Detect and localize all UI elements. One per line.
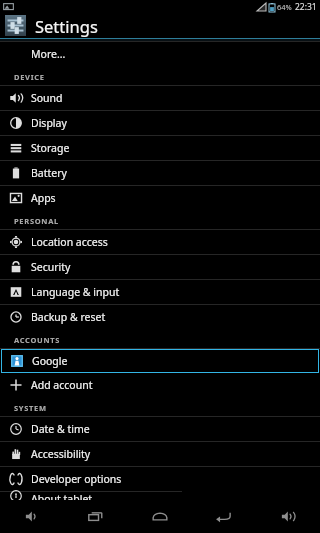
staticText: Sound <box>31 91 63 105</box>
staticText: Storage <box>31 141 70 155</box>
button[interactable]: Recent apps <box>64 500 128 533</box>
button[interactable]: Location access <box>0 230 320 254</box>
button[interactable]: Developer options <box>0 467 320 491</box>
button[interactable]: Security <box>0 255 320 279</box>
staticText: Google <box>32 354 68 368</box>
staticText: Security <box>31 260 71 274</box>
button[interactable]: Volume up <box>256 500 320 533</box>
button[interactable]: Accessibility <box>0 442 320 466</box>
staticText: Battery <box>31 166 67 180</box>
button[interactable]: Add account <box>0 373 320 397</box>
staticText: Display <box>31 116 67 130</box>
staticText: More... <box>31 47 66 61</box>
staticText: Add account <box>31 378 93 392</box>
staticText: ACCOUNTS <box>14 335 61 345</box>
button[interactable]: Battery <box>0 161 320 185</box>
button[interactable]: Backup & reset <box>0 305 320 329</box>
staticText: Language & input <box>31 285 120 299</box>
staticText: PERSONAL <box>14 216 59 226</box>
button[interactable]: More... <box>0 42 320 66</box>
button[interactable]: Language & input <box>0 280 320 304</box>
staticText: DEVICE <box>14 72 45 82</box>
staticText: About tablet <box>31 492 93 500</box>
staticText: 22:31 <box>295 1 317 13</box>
button[interactable]: Apps <box>0 186 320 210</box>
button[interactable]: Storage <box>0 136 320 160</box>
button[interactable]: Google <box>1 349 319 373</box>
staticText: Developer options <box>31 472 122 486</box>
button[interactable]: Display <box>0 111 320 135</box>
button[interactable]: Home <box>128 500 192 533</box>
button[interactable]: Settings <box>0 13 320 38</box>
staticText: Accessibility <box>31 447 91 461</box>
button[interactable]: Sound <box>0 86 320 110</box>
staticText: Date & time <box>31 422 90 436</box>
button[interactable]: About tablet <box>0 492 320 500</box>
staticText: Apps <box>31 191 56 205</box>
button[interactable]: Volume down <box>0 500 64 533</box>
button[interactable]: Date & time <box>0 417 320 441</box>
staticText: Settings <box>35 15 98 37</box>
staticText: Location access <box>31 235 108 249</box>
button[interactable]: Back <box>192 500 256 533</box>
staticText: 64% <box>277 2 292 12</box>
staticText: Backup & reset <box>31 310 106 324</box>
staticText: SYSTEM <box>14 403 47 413</box>
